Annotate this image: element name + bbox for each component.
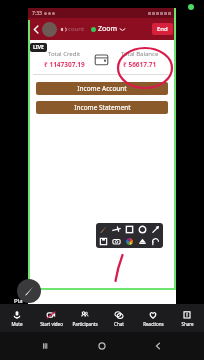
- staticText: Total Balance: [121, 50, 159, 58]
- button[interactable]: Pen: [99, 225, 108, 234]
- button[interactable]: Camera: [112, 237, 121, 246]
- button[interactable]: Arrow: [151, 225, 160, 234]
- button[interactable]: Income Statement: [36, 101, 168, 114]
- button[interactable]: Home: [92, 336, 112, 356]
- button[interactable]: Square: [125, 225, 134, 234]
- button[interactable]: Share: [170, 304, 204, 332]
- staticText: LIVE: [33, 44, 44, 51]
- staticText: count: [68, 25, 85, 33]
- button[interactable]: End: [152, 23, 173, 35]
- button[interactable]: Back: [148, 336, 168, 356]
- staticText: Zoom: [98, 24, 118, 34]
- button[interactable]: Chat: [102, 304, 136, 332]
- button[interactable]: Circle: [138, 225, 147, 234]
- staticText: Income Account: [77, 84, 127, 93]
- staticText: Pla: [14, 297, 23, 305]
- staticText: ₹ 1147307.19: [44, 60, 85, 69]
- button[interactable]: Annotate: [17, 279, 41, 303]
- staticText: End: [157, 25, 168, 33]
- staticText: 7:33: [32, 10, 42, 17]
- staticText: Share: [181, 321, 194, 327]
- button[interactable]: Spotlight: [112, 225, 121, 234]
- staticText: Start video: [40, 321, 63, 327]
- staticText: Total Credit: [48, 50, 81, 58]
- button[interactable]: Recents: [36, 336, 56, 356]
- button[interactable]: Reactions: [136, 304, 170, 332]
- button[interactable]: Income Account: [36, 82, 168, 95]
- staticText: Participants: [72, 321, 98, 327]
- staticText: Reactions: [143, 321, 164, 327]
- button[interactable]: Undo: [151, 237, 160, 246]
- staticText: ₹ 56617.71: [123, 60, 157, 69]
- staticText: Chat: [114, 321, 124, 327]
- staticText: Mute: [11, 321, 23, 327]
- button[interactable]: Participants: [68, 304, 102, 332]
- button[interactable]: Back: [31, 24, 42, 35]
- button[interactable]: Mute: [0, 304, 34, 332]
- button[interactable]: Eraser: [138, 237, 147, 246]
- button[interactable]: Color: [125, 237, 134, 246]
- button[interactable]: Start video: [34, 304, 68, 332]
- button[interactable]: Save: [99, 237, 108, 246]
- staticText: Income Statement: [74, 103, 131, 112]
